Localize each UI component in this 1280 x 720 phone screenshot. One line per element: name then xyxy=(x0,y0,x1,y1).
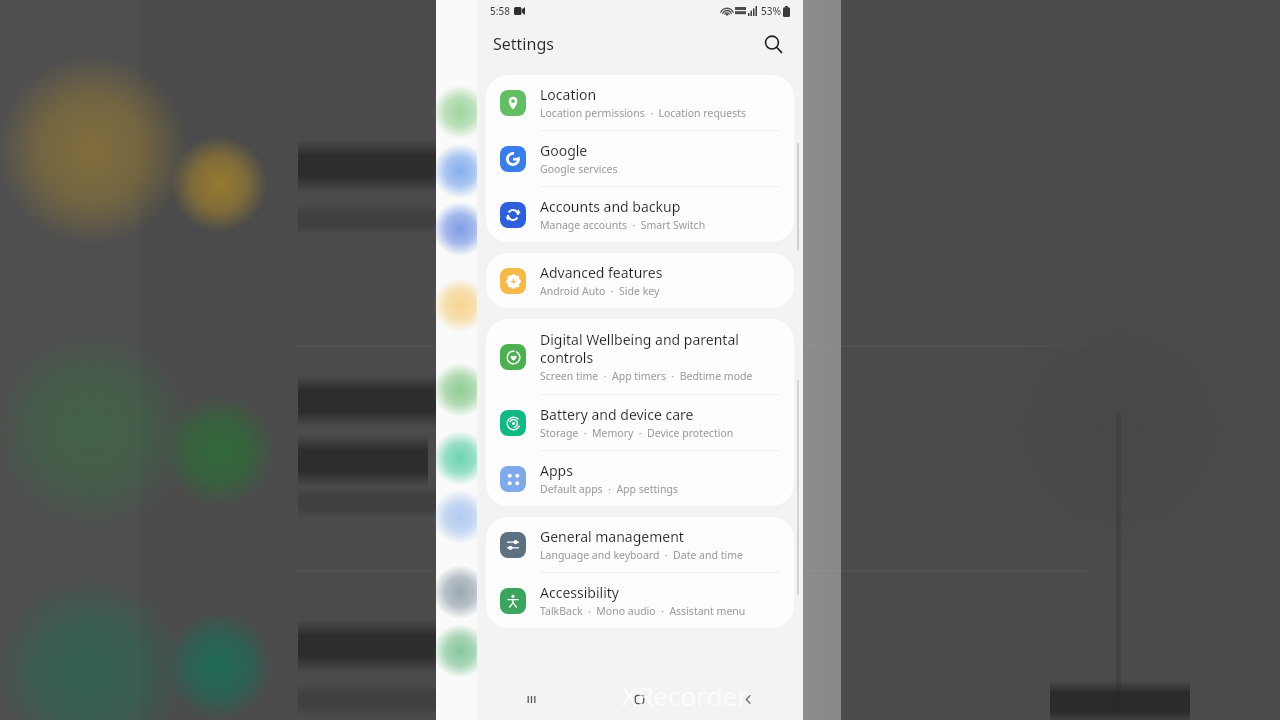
staticText: Settings xyxy=(493,33,554,55)
button[interactable]: Digital Wellbeing and parental controls xyxy=(486,319,794,394)
button[interactable]: General management xyxy=(486,517,794,572)
staticText: Screen time · App timers · Bedtime mode xyxy=(540,369,753,383)
staticText: Apps xyxy=(540,461,573,480)
staticText: Storage · Memory · Device protection xyxy=(540,426,734,440)
button[interactable]: Accounts and backup xyxy=(486,187,794,242)
button[interactable]: Battery and device care xyxy=(486,395,794,450)
staticText: 5:58 xyxy=(490,4,510,18)
button[interactable]: Apps xyxy=(486,451,794,506)
staticText: 53% xyxy=(761,4,781,18)
staticText: Google xyxy=(540,141,588,160)
button[interactable]: Accessibility xyxy=(486,573,794,628)
staticText: Battery and device care xyxy=(540,405,694,424)
staticText: Location permissions · Location requests xyxy=(540,106,747,120)
button[interactable]: Back xyxy=(694,678,803,720)
button[interactable]: Location xyxy=(486,75,794,130)
staticText: Digital Wellbeing and parental controls xyxy=(540,330,739,367)
staticText: TalkBack · Mono audio · Assistant menu xyxy=(540,604,746,618)
staticText: Default apps · App settings xyxy=(540,482,678,496)
staticText: General management xyxy=(540,527,684,546)
staticText: Accessibility xyxy=(540,583,619,602)
staticText: Manage accounts · Smart Switch xyxy=(540,218,706,232)
staticText: XRecorder xyxy=(622,678,748,713)
staticText: Location xyxy=(540,85,597,104)
button[interactable]: Google xyxy=(486,131,794,186)
button[interactable]: Home xyxy=(585,678,694,720)
staticText: Android Auto · Side key xyxy=(540,284,660,298)
button[interactable]: Recent apps xyxy=(477,678,585,720)
button[interactable]: Search settings xyxy=(757,28,789,60)
staticText: Google services xyxy=(540,162,618,176)
staticText: Language and keyboard · Date and time xyxy=(540,548,743,562)
staticText: Accounts and backup xyxy=(540,197,681,216)
button[interactable]: Advanced features xyxy=(486,253,794,308)
staticText: Advanced features xyxy=(540,263,663,282)
